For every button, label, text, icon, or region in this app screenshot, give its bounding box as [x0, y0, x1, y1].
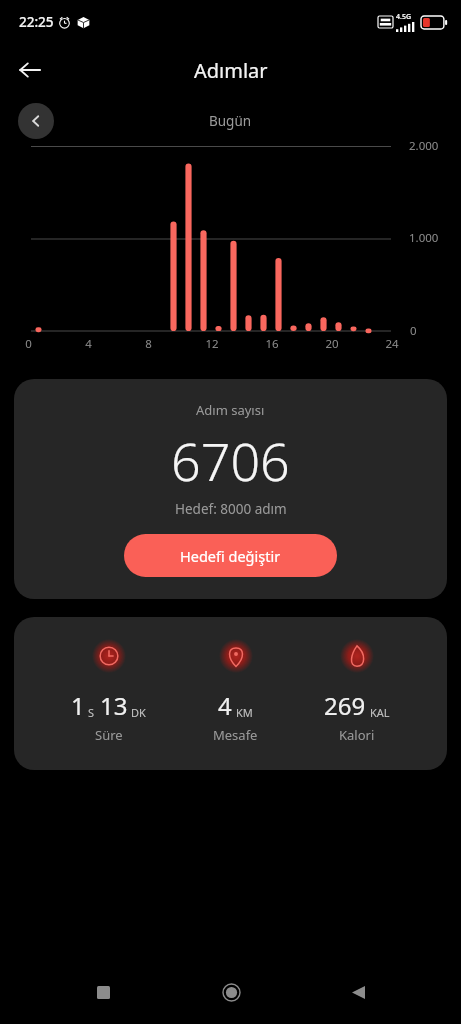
staticText: 4 — [85, 336, 92, 352]
button[interactable]: Back — [334, 968, 382, 1016]
staticText: Mesafe — [213, 726, 258, 744]
staticText: 1 — [71, 689, 85, 722]
staticText: 2.000 — [409, 138, 439, 154]
staticText: 4 — [218, 689, 232, 722]
button[interactable]: Back — [8, 48, 52, 92]
staticText: 269 — [324, 689, 366, 722]
staticText: 4.5G — [396, 12, 412, 22]
staticText: Bugün — [209, 112, 252, 130]
staticText: DK — [131, 705, 146, 720]
staticText: Kalori — [339, 726, 375, 744]
button[interactable]: 269 — [314, 639, 400, 744]
staticText: Adımlar — [194, 57, 268, 84]
staticText: 16 — [265, 336, 279, 352]
button[interactable]: Home — [207, 968, 255, 1016]
staticText: 0 — [410, 323, 417, 339]
staticText: 6706 — [171, 425, 290, 496]
staticText: Adım sayısı — [196, 401, 265, 419]
staticText: KAL — [370, 705, 390, 720]
staticText: Hedef: 8000 adım — [175, 500, 287, 518]
staticText: 22:25 — [19, 13, 54, 31]
button[interactable]: Hedefi değiştir — [124, 534, 337, 577]
staticText: 12 — [205, 336, 219, 352]
staticText: 13 — [100, 689, 128, 722]
button[interactable]: Previous day — [18, 103, 54, 139]
staticText: 8 — [145, 336, 152, 352]
staticText: KM — [236, 705, 253, 720]
staticText: 24 — [385, 336, 399, 352]
staticText: 0 — [25, 336, 32, 352]
staticText: S — [88, 705, 95, 720]
button[interactable]: 4 — [203, 639, 268, 744]
button[interactable]: Recent apps — [79, 968, 127, 1016]
button[interactable]: 1 — [61, 639, 156, 744]
staticText: Süre — [95, 726, 123, 744]
staticText: 1.000 — [409, 230, 439, 246]
staticText: 20 — [325, 336, 339, 352]
staticText: Hedefi değiştir — [180, 546, 281, 566]
